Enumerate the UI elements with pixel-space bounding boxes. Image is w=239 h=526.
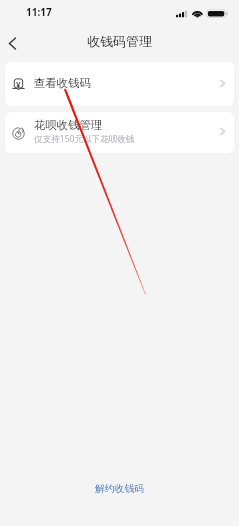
button[interactable]: 花呗收钱管理 bbox=[5, 112, 234, 153]
button[interactable]: Back bbox=[0, 29, 26, 55]
staticText: 查看收钱码 bbox=[34, 76, 91, 90]
button[interactable]: ¥ bbox=[5, 62, 234, 106]
staticText: 仅支持150元以下花呗收钱 bbox=[34, 133, 135, 145]
staticText: 解约收钱码 bbox=[95, 483, 144, 495]
staticText: 11:17 bbox=[26, 5, 52, 19]
button[interactable]: 解约收钱码 bbox=[0, 475, 239, 503]
staticText: 花呗收钱管理 bbox=[34, 118, 103, 132]
staticText: 收钱码管理 bbox=[87, 33, 152, 49]
staticText: ¥ bbox=[16, 79, 21, 90]
